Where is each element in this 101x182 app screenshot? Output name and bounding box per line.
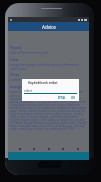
staticText: Language bbox=[10, 84, 31, 90]
staticText: OK bbox=[71, 96, 76, 100]
staticText: Cite bbox=[10, 57, 19, 63]
staticText: Kaydedilecek etiket bbox=[28, 81, 58, 85]
staticText: integral bringing to industry relevant i… bbox=[10, 63, 87, 70]
staticText: a text body that keeps going across many… bbox=[10, 90, 87, 130]
staticText: İPTAL bbox=[58, 96, 66, 100]
staticText: Fiyatı bbox=[10, 45, 22, 51]
staticText: Post bbox=[10, 72, 20, 78]
button[interactable]: Advice bbox=[8, 22, 89, 31]
button[interactable]: Nav item bbox=[31, 146, 37, 152]
button[interactable]: Nav item bbox=[75, 146, 81, 152]
staticText: etiket bbox=[24, 89, 32, 93]
staticText: a small content line bbox=[10, 78, 38, 82]
button[interactable]: OK bbox=[70, 96, 77, 100]
button[interactable]: Nav item bbox=[17, 146, 23, 152]
button[interactable]: İPTAL bbox=[57, 96, 67, 100]
button[interactable]: Nav item bbox=[60, 146, 66, 152]
button[interactable]: Nav item bbox=[46, 146, 52, 152]
staticText: Advice bbox=[42, 24, 56, 30]
staticText: a bit of the content needed bbox=[10, 51, 49, 55]
